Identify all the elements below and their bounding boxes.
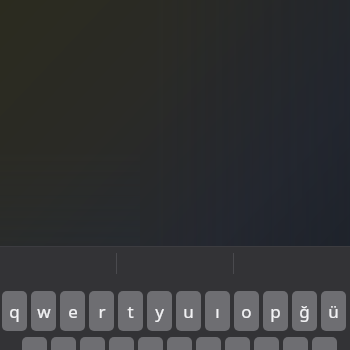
button[interactable]: q [2,291,27,331]
button[interactable]: ğ [292,291,317,331]
staticText: r [98,300,106,323]
staticText: ü [328,300,339,323]
button[interactable]: r [89,291,114,331]
staticText: t [127,300,134,323]
button[interactable]: i [312,337,337,350]
button[interactable]: g [138,337,163,350]
button[interactable]: k [225,337,250,350]
button[interactable]: p [263,291,288,331]
staticText: o [241,300,252,323]
staticText: q [9,300,20,323]
staticText: p [270,300,281,323]
button[interactable]: j [196,337,221,350]
button[interactable]: d [80,337,105,350]
button[interactable]: a [22,337,47,350]
button[interactable]: ü [321,291,346,331]
button[interactable]: ı [205,291,230,331]
button[interactable]: y [147,291,172,331]
staticText: u [183,300,194,323]
button[interactable]: ş [283,337,308,350]
staticText: ı [215,300,220,323]
button[interactable]: u [176,291,201,331]
button[interactable]: e [60,291,85,331]
staticText: y [155,300,164,323]
button[interactable]: s [51,337,76,350]
staticText: e [68,300,78,323]
button[interactable]: f [109,337,134,350]
button[interactable]: h [167,337,192,350]
staticText: w [37,300,51,323]
button[interactable]: w [31,291,56,331]
button[interactable]: o [234,291,259,331]
staticText: ğ [299,300,310,323]
button[interactable]: l [254,337,279,350]
button[interactable]: t [118,291,143,331]
